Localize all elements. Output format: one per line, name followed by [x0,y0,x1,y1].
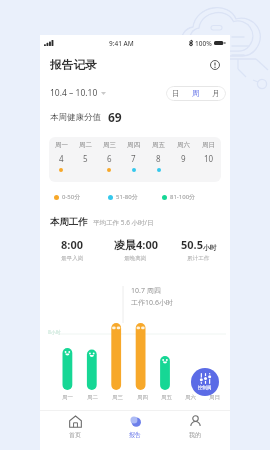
staticText: 报告记录 [50,58,97,73]
staticText: 本周工作 [50,216,88,228]
button[interactable]: 周六 [171,137,196,172]
staticText: 周一 [55,141,68,149]
staticText: 小时 [203,243,217,252]
staticText: 最晚离岗 [124,255,147,262]
button[interactable]: 我的 [165,410,225,450]
staticText: 周六 [177,141,190,149]
staticText: 5 [83,153,88,164]
staticText: 周二 [87,394,98,401]
staticText: 6 [107,153,112,164]
staticText: 周四 [127,141,140,149]
button[interactable]: 日 [166,86,186,101]
staticText: 最早入岗 [61,255,84,262]
staticText: 周五 [161,394,172,401]
button[interactable]: 控制阀 [191,368,219,396]
staticText: 本周健康分值 [50,112,101,123]
staticText: 周日 [202,141,215,149]
staticText: 周二 [79,141,92,149]
staticText: 10 [204,153,214,164]
button[interactable]: 周二 [73,137,97,172]
staticText: 0-50分 [62,193,81,201]
staticText: 9:41 AM [109,39,134,48]
staticText: 控制阀 [198,385,212,391]
staticText: 8小时 [48,329,61,336]
staticText: 周五 [152,141,165,149]
staticText: 10.7 周四 [131,286,161,296]
button[interactable]: 周 [186,86,206,101]
button[interactable]: 周四 [121,137,146,172]
staticText: 周六 [185,394,196,401]
staticText: 8 [156,153,161,164]
staticText: 10.4 – 10.10 [50,87,98,99]
staticText: 81-100分 [170,193,196,201]
button[interactable]: 首页 [45,410,105,450]
staticText: 4 [59,153,64,164]
button[interactable]: 说明 [207,57,223,73]
staticText: 日 [172,89,180,98]
staticText: 51-80分 [116,193,138,201]
staticText: 50.5 [181,237,203,252]
staticText: 69 [108,109,122,125]
staticText: 9 [181,153,186,164]
staticText: 工作10.6小时 [131,298,173,308]
staticText: 我的 [189,431,201,439]
button[interactable]: 周三 [97,137,121,172]
staticText: 周 [192,89,200,98]
button[interactable]: 周日 [196,137,221,172]
staticText: 周三 [103,141,116,149]
button[interactable]: 10.4 – 10.10 [50,87,106,99]
staticText: 报告 [129,431,141,439]
staticText: 8:00 [61,237,83,252]
button[interactable]: 报告 [105,410,165,450]
staticText: 周三 [112,394,123,401]
staticText: 周日 [209,394,220,401]
button[interactable]: 周五 [146,137,171,172]
button[interactable]: 周一 [49,137,73,172]
staticText: 100% [195,39,212,48]
button[interactable]: 月 [206,86,226,101]
staticText: 凌晨4:00 [114,237,158,252]
staticText: 累计工作 [187,255,210,262]
staticText: 周四 [137,394,148,401]
staticText: 7 [131,153,136,164]
staticText: 平均工作 5.6 小时/日 [93,218,154,227]
staticText: 周一 [62,394,73,401]
staticText: 月 [212,89,220,98]
staticText: 首页 [69,431,81,439]
